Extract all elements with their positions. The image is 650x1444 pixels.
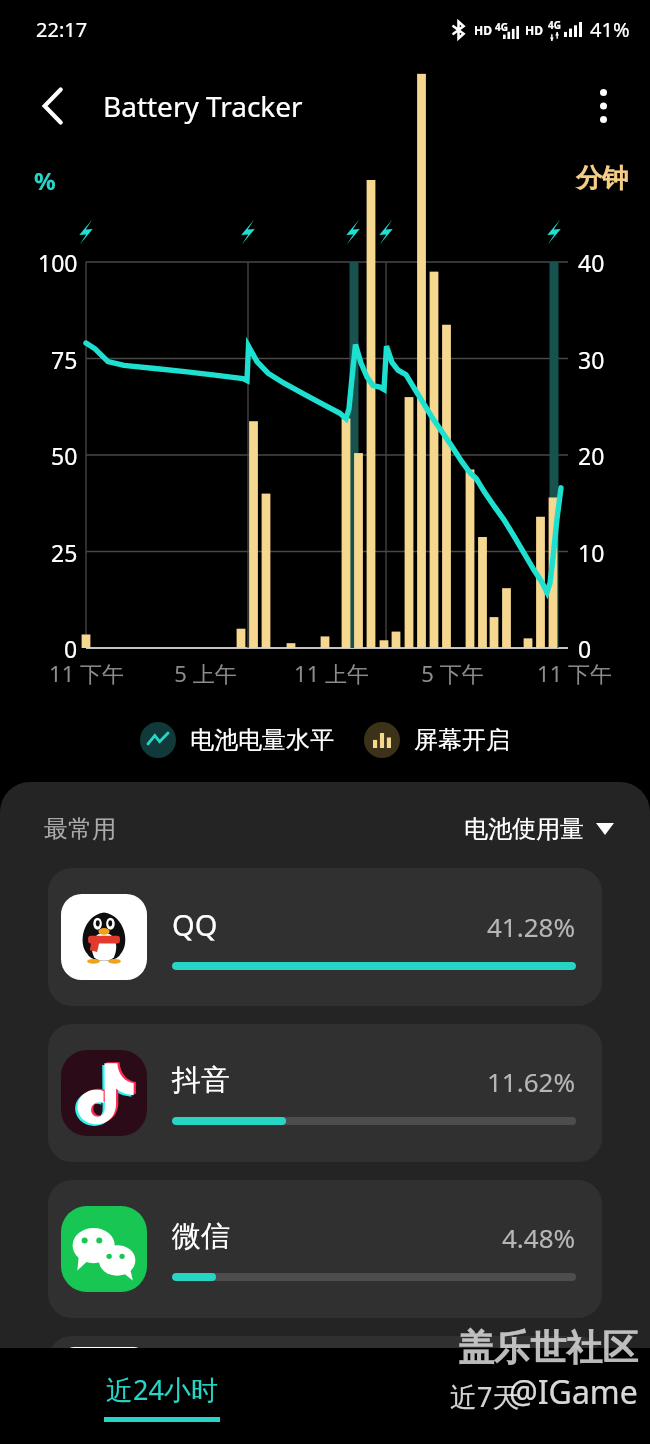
staticText: 10 bbox=[578, 537, 605, 568]
staticText: 20 bbox=[578, 440, 605, 471]
staticText: 40 bbox=[578, 247, 605, 278]
staticText: QQ bbox=[172, 905, 218, 944]
staticText: 0 bbox=[64, 633, 78, 664]
staticText: % bbox=[34, 164, 56, 197]
staticText: 电池电量水平 bbox=[190, 725, 334, 755]
staticText: HD bbox=[525, 22, 543, 38]
button[interactable]: More options bbox=[574, 77, 632, 135]
staticText: 11 下午 bbox=[537, 658, 612, 688]
button[interactable]: QQ bbox=[48, 868, 602, 1006]
staticText: 100 bbox=[38, 247, 78, 278]
staticText: 近7天 bbox=[450, 1378, 520, 1415]
staticText: 11.62% bbox=[487, 1064, 576, 1099]
staticText: 今日头条 bbox=[172, 1359, 288, 1396]
button[interactable]: 微信 bbox=[48, 1180, 602, 1318]
staticText: 41% bbox=[590, 16, 630, 43]
staticText: 41.28% bbox=[487, 909, 576, 944]
staticText: @IGame bbox=[509, 1370, 638, 1414]
staticText: 近24小时 bbox=[106, 1371, 218, 1408]
staticText: 25 bbox=[51, 537, 78, 568]
staticText: 4G bbox=[495, 20, 508, 34]
staticText: 盖乐世社区 bbox=[458, 1325, 638, 1370]
button[interactable]: 今日头条 bbox=[48, 1336, 602, 1444]
button[interactable]: 近7天 bbox=[450, 1378, 520, 1415]
staticText: 电池使用量 bbox=[464, 814, 584, 844]
button[interactable]: 近24小时 bbox=[104, 1371, 220, 1422]
staticText: 30 bbox=[578, 344, 605, 375]
button[interactable]: 抖音 bbox=[48, 1024, 602, 1162]
staticText: 屏幕开启 bbox=[414, 725, 510, 755]
button[interactable]: 电池使用量 bbox=[464, 814, 614, 844]
staticText: 75 bbox=[51, 344, 78, 375]
button[interactable]: Back bbox=[22, 75, 84, 137]
staticText: 4G bbox=[548, 18, 561, 32]
staticText: 分钟 bbox=[576, 162, 628, 195]
staticText: 11 下午 bbox=[49, 658, 124, 688]
staticText: 5 下午 bbox=[421, 658, 484, 688]
staticText: 微信 bbox=[172, 1218, 230, 1255]
staticText: 抖音 bbox=[172, 1062, 230, 1099]
staticText: 11 上午 bbox=[294, 658, 369, 688]
staticText: 4.20% bbox=[502, 1361, 576, 1396]
staticText: 22:17 bbox=[36, 16, 88, 43]
staticText: 4.48% bbox=[502, 1220, 576, 1255]
staticText: HD bbox=[474, 22, 492, 38]
staticText: 最常用 bbox=[44, 814, 116, 844]
staticText: 5 上午 bbox=[174, 658, 237, 688]
staticText: 0 bbox=[578, 633, 592, 664]
staticText: 50 bbox=[51, 440, 78, 471]
staticText: Battery Tracker bbox=[103, 87, 303, 125]
